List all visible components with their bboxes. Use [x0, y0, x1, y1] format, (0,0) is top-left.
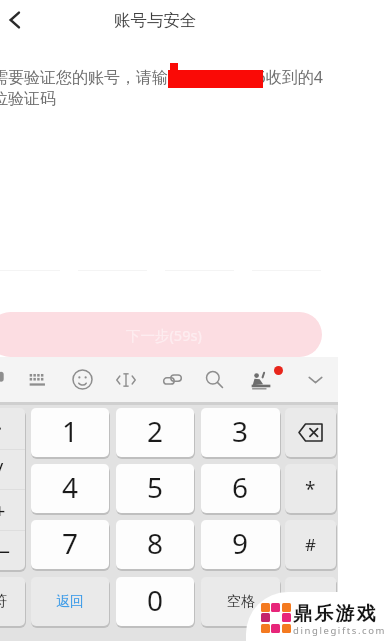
button[interactable]: 7	[31, 520, 109, 569]
button[interactable]	[285, 408, 336, 457]
button[interactable]: Emoji	[72, 369, 93, 390]
button[interactable]: 9	[201, 520, 280, 569]
button[interactable]: Hide keyboard	[305, 369, 326, 390]
button[interactable]: —	[0, 531, 25, 570]
button[interactable]	[285, 577, 336, 626]
button[interactable]: Delete	[298, 423, 323, 442]
staticText: 位验证码	[0, 89, 56, 109]
staticText: 0	[147, 581, 164, 619]
staticText: 7	[62, 524, 79, 562]
staticText: 2	[147, 412, 164, 450]
button[interactable]: 5	[116, 464, 194, 513]
staticText: 下一步(59s)	[126, 325, 202, 345]
button[interactable]: *	[285, 464, 336, 513]
staticText: 1	[62, 412, 79, 450]
staticText: 6	[232, 468, 249, 506]
button[interactable]: 6	[201, 464, 280, 513]
button[interactable]: 符	[0, 577, 25, 626]
staticText: +	[0, 497, 6, 524]
button[interactable]: Back	[0, 4, 31, 36]
staticText: 8	[147, 524, 164, 562]
staticText: 3	[232, 412, 249, 450]
button[interactable]: Handwriting	[248, 367, 274, 393]
staticText: 4	[62, 468, 79, 506]
staticText: #	[305, 533, 316, 556]
button[interactable]: /	[0, 449, 25, 490]
button[interactable]	[287, 577, 336, 626]
staticText: 符	[0, 592, 7, 611]
button[interactable]: Voice input	[0, 370, 10, 388]
button[interactable]: Insert link	[162, 369, 183, 390]
button[interactable]: +	[0, 490, 25, 531]
staticText: 需要验证您的账号，请输入186**6666收到的4	[0, 66, 323, 88]
button[interactable]: ·	[0, 408, 25, 449]
staticText: 返回	[56, 593, 84, 611]
button[interactable]: 8	[116, 520, 194, 569]
staticText: 9	[232, 524, 249, 562]
button[interactable]: 下一步(59s)	[0, 312, 322, 357]
button[interactable]: Search	[204, 369, 225, 390]
button[interactable]: Move cursor	[115, 369, 137, 391]
button[interactable]: 2	[116, 408, 194, 457]
staticText: 5	[147, 468, 164, 506]
button[interactable]: Switch keyboard	[28, 370, 48, 390]
button[interactable]: 4	[31, 464, 109, 513]
button[interactable]: 3	[201, 408, 280, 457]
staticText: dinglegifts.com	[293, 624, 384, 637]
button[interactable]: 空格	[201, 577, 280, 626]
staticText: 鼎乐游戏	[293, 602, 378, 626]
staticText: /	[0, 456, 4, 483]
staticText: *	[305, 476, 316, 502]
staticText: 空格	[227, 593, 255, 611]
staticText: ·	[0, 415, 3, 442]
staticText: 账号与安全	[114, 10, 197, 31]
button[interactable]: 1	[31, 408, 109, 457]
button[interactable]: 返回	[31, 577, 109, 626]
button[interactable]: #	[285, 520, 336, 569]
button[interactable]: 0	[116, 577, 194, 626]
staticText: —	[0, 537, 10, 564]
